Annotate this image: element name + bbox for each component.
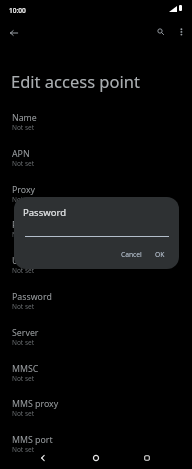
button[interactable]: Cancel [115,247,148,262]
staticText: Not set [12,445,35,454]
staticText: Edit access point [11,70,140,92]
staticText: Not set [12,230,35,239]
staticText: Not set [12,195,35,204]
staticText: Not set [12,159,35,168]
button[interactable]: Back [2,21,26,45]
staticText: MMS port [12,434,53,446]
staticText: Not set [12,123,35,132]
staticText: Password [12,291,52,303]
staticText: MMSC [12,363,39,375]
button[interactable]: Search [149,21,171,43]
button[interactable]: MMSC [0,362,192,398]
button[interactable]: MMS port [0,433,192,469]
button[interactable]: Password [0,290,192,326]
staticText: Not set [12,266,35,275]
button[interactable]: Name [0,111,192,147]
button[interactable]: MMS proxy [0,397,192,433]
staticText: Name [12,112,37,124]
button[interactable]: Proxy [0,183,192,219]
staticText: Port [12,219,30,231]
staticText: Not set [12,338,35,347]
staticText: Not set [12,302,35,311]
staticText: Password [23,206,66,219]
button[interactable]: Username [0,254,192,290]
staticText: Not set [12,409,35,418]
button[interactable]: Server [0,326,192,362]
button[interactable]: APN [0,147,192,183]
button[interactable]: OK [149,247,171,262]
staticText: OK [155,250,165,259]
button[interactable]: More options [170,21,192,43]
staticText: Not set [12,374,35,383]
staticText: 10:00 [9,6,26,15]
button[interactable]: Port [0,218,192,254]
staticText: Proxy [12,184,36,196]
staticText: Cancel [121,250,142,259]
staticText: MMS proxy [12,398,59,410]
staticText: Username [12,255,55,267]
staticText: Server [12,327,39,339]
button[interactable]: Back [32,447,54,469]
button[interactable]: Recents [136,447,158,469]
staticText: APN [12,148,30,160]
button[interactable]: Home [85,447,107,469]
